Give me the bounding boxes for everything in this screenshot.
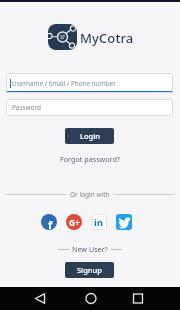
staticText: Signup xyxy=(77,265,102,275)
button[interactable] xyxy=(60,287,120,310)
button[interactable] xyxy=(120,287,180,310)
button[interactable]: Forgot password? xyxy=(60,154,120,164)
staticText: G+ xyxy=(69,217,80,228)
button[interactable]: Signup xyxy=(65,262,114,278)
staticText: in xyxy=(94,216,104,229)
staticText: Login xyxy=(80,131,100,141)
staticText: New User? xyxy=(72,244,108,254)
staticText: Username / Email / Phone number xyxy=(12,79,116,88)
button[interactable]: Password xyxy=(6,99,173,116)
button[interactable]: in xyxy=(91,214,107,230)
button[interactable]: G+ xyxy=(66,214,82,230)
button[interactable]: Login xyxy=(65,128,114,144)
button[interactable]: f xyxy=(41,214,57,230)
staticText: Password xyxy=(12,103,41,112)
staticText: Or login with xyxy=(70,190,110,199)
staticText: MyCotra xyxy=(80,29,134,47)
button[interactable] xyxy=(116,214,132,230)
button[interactable] xyxy=(0,287,60,310)
button[interactable]: Username / Email / Phone number xyxy=(6,73,173,93)
staticText: f xyxy=(48,217,53,230)
